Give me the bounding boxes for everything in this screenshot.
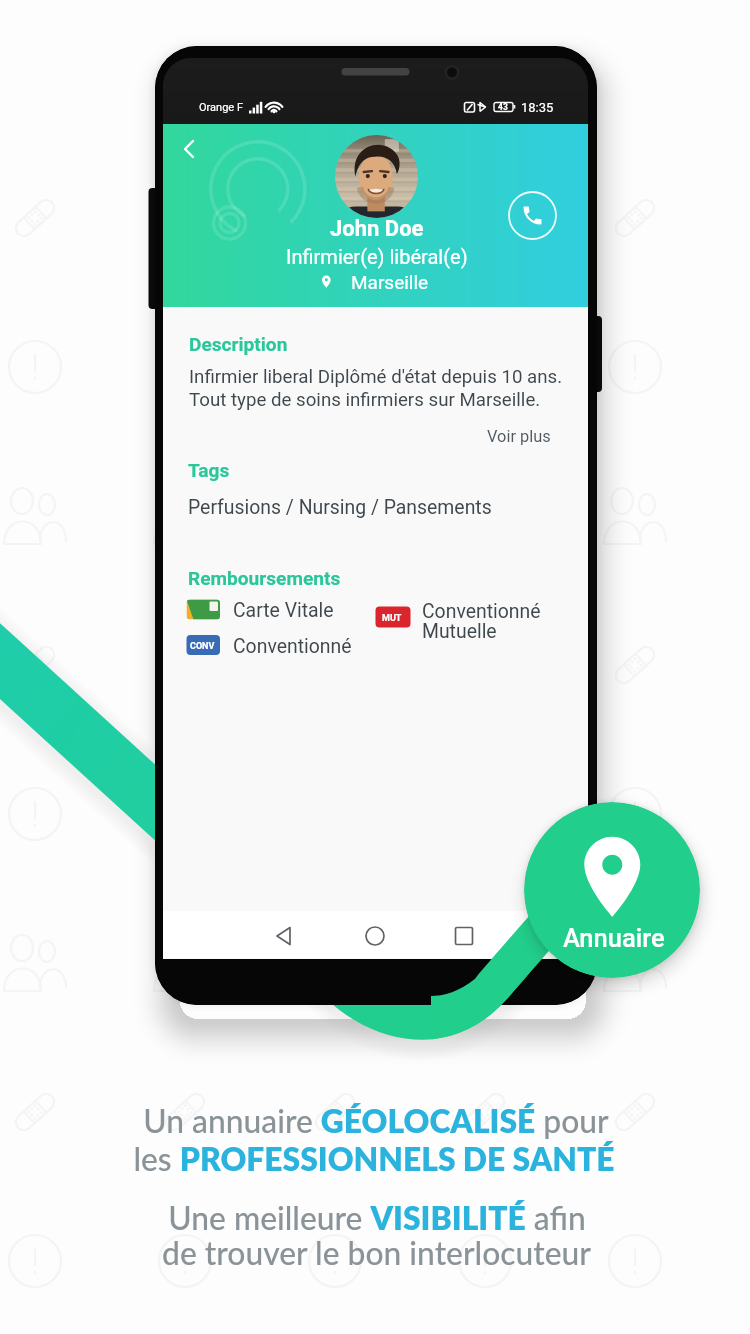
staticText: Un annuaire GÉOLOCALISÉ pour: [143, 1102, 609, 1140]
staticText: John Doe: [330, 216, 424, 242]
staticText: Description: [189, 333, 288, 355]
button[interactable]: Recents: [442, 914, 486, 958]
staticText: MUT: [382, 613, 402, 624]
staticText: Marseille: [351, 271, 429, 293]
staticText: Tags: [188, 459, 230, 481]
button[interactable]: Annuaire: [524, 802, 700, 978]
staticText: Remboursements: [188, 567, 341, 589]
staticText: Conventionné: [233, 635, 352, 658]
staticText: les PROFESSIONNELS DE SANTÉ: [133, 1140, 615, 1178]
staticText: de trouver le bon interlocuteur: [162, 1234, 591, 1272]
staticText: Voir plus: [487, 427, 551, 446]
staticText: Mutuelle: [422, 620, 497, 643]
staticText: Infirmier(e) libéral(e): [286, 245, 468, 268]
button[interactable]: Appeler: [508, 191, 557, 240]
button[interactable]: Voir plus: [451, 423, 551, 449]
staticText: 43: [498, 102, 508, 112]
button[interactable]: Home: [353, 914, 397, 958]
staticText: Perfusions / Nursing / Pansements: [188, 496, 492, 519]
staticText: CONV: [190, 641, 215, 652]
staticText: Annuaire: [563, 923, 665, 953]
button[interactable]: Back: [263, 914, 307, 958]
staticText: Infirmier liberal Diplômé d'état depuis …: [189, 366, 563, 388]
staticText: Carte Vitale: [233, 599, 334, 622]
staticText: Une meilleure VISIBILITÉ afin: [168, 1199, 586, 1237]
staticText: 18:35: [521, 100, 554, 115]
staticText: Orange F: [199, 101, 243, 114]
button[interactable]: Retour: [168, 128, 208, 168]
staticText: Tout type de soins infirmiers sur Marsei…: [189, 389, 541, 411]
staticText: Conventionné: [422, 600, 541, 623]
